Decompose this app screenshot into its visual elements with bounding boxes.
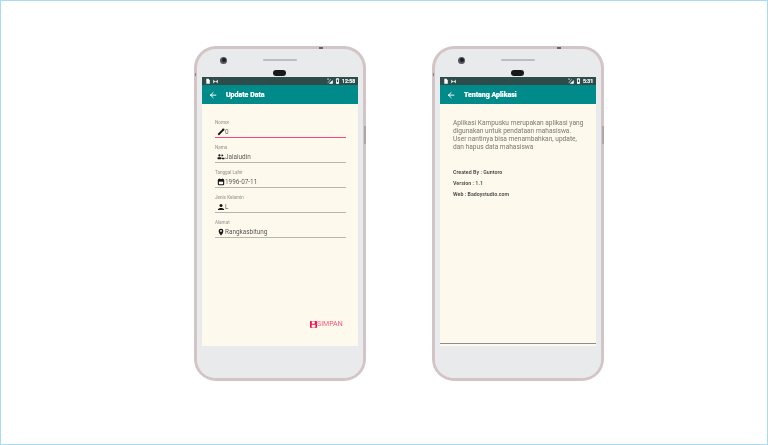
button[interactable]: SIMPAN [310, 320, 343, 328]
button[interactable]: Nama [215, 144, 346, 169]
staticText: Nomor [215, 120, 230, 125]
staticText: Aplikasi Kampusku merupakan aplikasi yan… [453, 119, 584, 151]
staticText: Jenis Kelamin [215, 195, 244, 200]
staticText: Alamat [215, 220, 230, 225]
staticText: 12:58 [342, 78, 356, 84]
staticText: Version : 1.1 [453, 180, 483, 186]
staticText: Created By : Guntoro [453, 169, 503, 175]
staticText: 5:31 [583, 78, 594, 84]
staticText: Jalaludin [225, 153, 251, 161]
staticText: Rangkasbitung [225, 228, 268, 236]
staticText: Tanggal Lahir [215, 170, 243, 175]
button[interactable]: Tanggal Lahir [215, 169, 346, 194]
staticText: SIMPAN [317, 320, 343, 328]
staticText: Tentang Aplikasi [464, 91, 517, 99]
button[interactable]: Nomor [215, 119, 346, 144]
staticText: L [225, 203, 229, 211]
staticText: 0 [225, 128, 229, 136]
staticText: 1996-07-11 [225, 178, 258, 186]
staticText: Web : Badoystudio.com [453, 191, 510, 197]
button[interactable]: Back [206, 88, 219, 101]
staticText: Update Data [226, 91, 265, 99]
button[interactable]: Back [444, 88, 457, 101]
button[interactable]: Jenis Kelamin [215, 194, 346, 219]
staticText: Nama [215, 145, 228, 150]
button[interactable]: Alamat [215, 219, 346, 244]
